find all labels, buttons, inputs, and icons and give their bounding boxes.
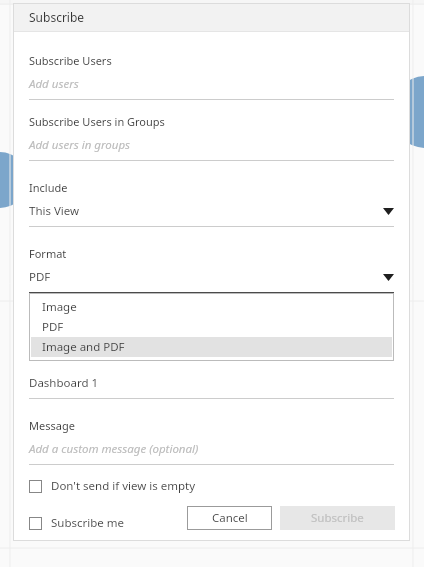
staticText: Subscribe Users [29, 53, 112, 68]
staticText: Don't send if view is empty [51, 478, 196, 494]
staticText: Image and PDF [42, 339, 125, 355]
button[interactable]: Image and PDF [31, 337, 392, 357]
button[interactable]: Include [29, 180, 394, 227]
button[interactable]: Format [29, 246, 394, 293]
staticText: Dashboard 1 [29, 375, 99, 391]
staticText: Add a custom message (optional) [29, 441, 199, 457]
staticText: This View [29, 203, 383, 219]
button[interactable]: PDF [31, 317, 392, 337]
button[interactable]: Don't send if view is empty [29, 476, 394, 496]
staticText: Message [29, 418, 75, 433]
staticText: Subscribe me [51, 515, 125, 531]
staticText: Cancel [212, 510, 248, 526]
staticText: PDF [42, 319, 64, 335]
staticText: Subscribe [311, 510, 364, 526]
button[interactable]: Cancel [187, 506, 272, 530]
button[interactable]: Image [31, 297, 392, 317]
button[interactable]: Subscribe me [29, 513, 394, 533]
staticText: Add users in groups [29, 137, 131, 153]
staticText: Include [29, 180, 68, 195]
staticText: Subscribe [29, 9, 85, 25]
staticText: Subscribe Users in Groups [29, 114, 165, 129]
staticText: Format [29, 246, 67, 261]
staticText: Add users [29, 76, 79, 92]
staticText: PDF [29, 269, 383, 285]
staticText: Image [42, 299, 77, 315]
button[interactable]: Subscribe [280, 506, 395, 530]
